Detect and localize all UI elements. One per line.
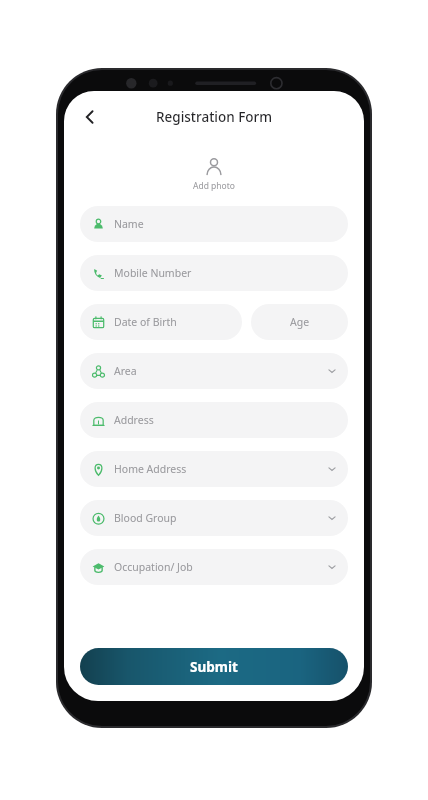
button[interactable]: Occupation/ Job xyxy=(80,549,348,585)
staticText: Address xyxy=(114,413,336,427)
staticText: Registration Form xyxy=(156,108,273,126)
staticText: Home Address xyxy=(114,462,328,476)
staticText: Name xyxy=(114,217,336,231)
button[interactable]: Back xyxy=(72,99,108,135)
staticText: Add photo xyxy=(193,180,235,192)
staticText: Date of Birth xyxy=(114,315,230,329)
button[interactable]: Blood Group xyxy=(80,500,348,536)
staticText: Age xyxy=(290,315,310,329)
staticText: Blood Group xyxy=(114,511,328,525)
button[interactable]: Age xyxy=(251,304,348,340)
staticText: Submit xyxy=(190,658,238,676)
button[interactable]: Area xyxy=(80,353,348,389)
button[interactable]: Submit xyxy=(80,648,348,685)
staticText: Area xyxy=(114,364,328,378)
staticText: Occupation/ Job xyxy=(114,560,328,574)
staticText: Mobile Number xyxy=(114,266,336,280)
button[interactable]: Home Address xyxy=(80,451,348,487)
button[interactable]: Address xyxy=(80,402,348,438)
button[interactable]: Name xyxy=(80,206,348,242)
button[interactable]: Mobile Number xyxy=(80,255,348,291)
button[interactable]: Add photo xyxy=(64,157,364,192)
button[interactable]: Date of Birth xyxy=(80,304,242,340)
